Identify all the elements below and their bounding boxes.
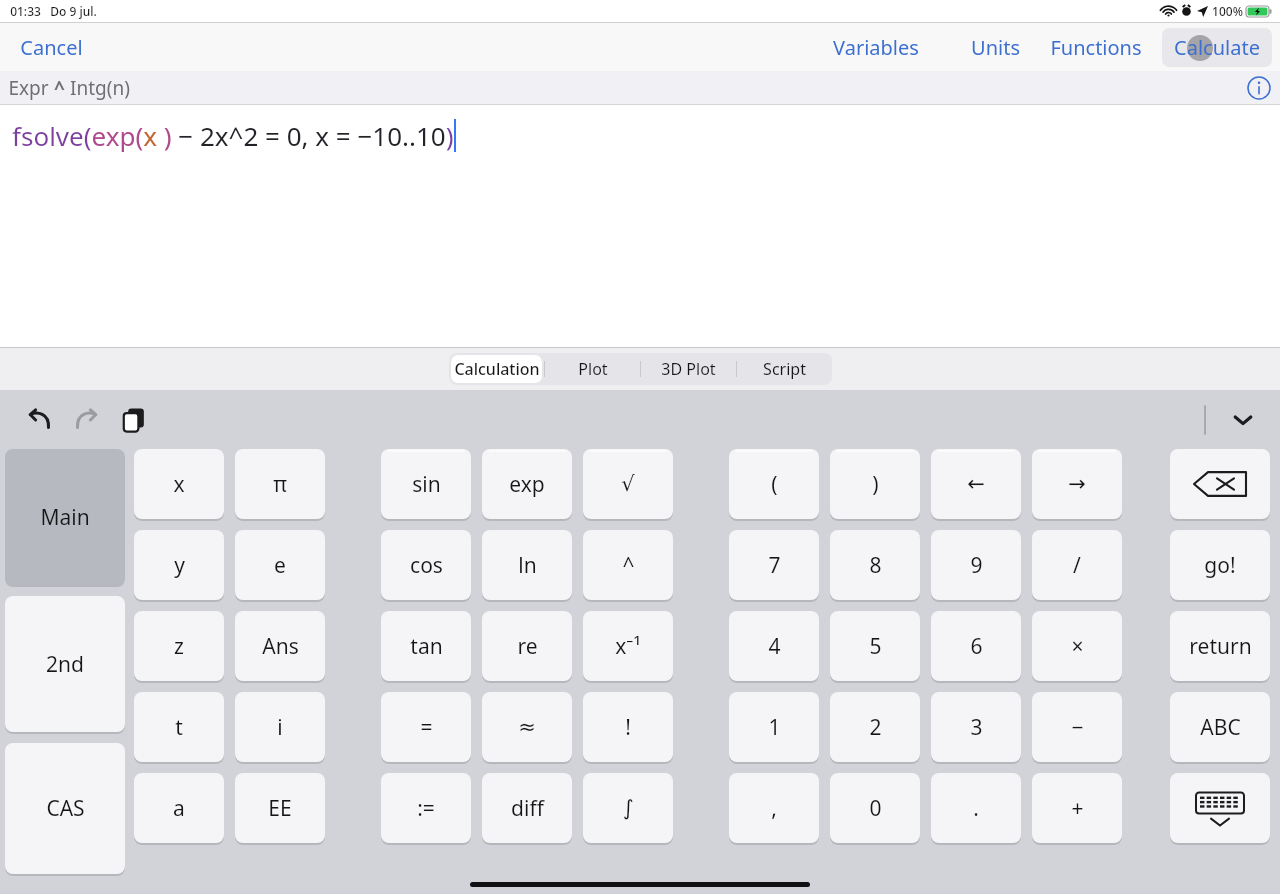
button[interactable]: := [381,773,471,843]
button[interactable]: EE [235,773,325,843]
button[interactable]: CAS [5,743,125,874]
staticText: . [973,794,979,823]
button[interactable]: / [1032,530,1122,600]
button[interactable]: exp [482,449,572,519]
staticText: Intg(n) [70,75,130,101]
staticText: fsolve(exp(x ) − 2x^2 = 0, x = −10..10) [12,118,454,153]
button[interactable]: ABC [1170,692,1270,762]
button[interactable]: × [1032,611,1122,681]
staticText: := [417,794,435,823]
button[interactable]: Variables [825,30,927,65]
button[interactable]: = [381,692,471,762]
staticText: 2 [869,713,882,742]
staticText: diff [511,794,544,823]
button[interactable]: diff [482,773,572,843]
button[interactable]: Info [1247,76,1271,100]
button[interactable]: ∫ [583,773,673,843]
button[interactable]: i [235,692,325,762]
button[interactable]: t [134,692,224,762]
button[interactable]: x⁻¹ [583,611,673,681]
button[interactable]: Functions [1042,30,1150,65]
staticText: a [173,794,185,823]
button[interactable]: → [1032,449,1122,519]
button[interactable]: 0 [830,773,920,843]
staticText: − [1071,713,1084,742]
button[interactable]: y [134,530,224,600]
staticText: Calculate [1174,34,1260,61]
staticText: 3D Plot [661,358,716,380]
button[interactable]: a [134,773,224,843]
staticText: → [1068,472,1086,496]
button[interactable]: 2nd [5,596,125,732]
button[interactable]: , [729,773,819,843]
button[interactable]: 4 [729,611,819,681]
staticText: 2nd [46,650,84,679]
button[interactable]: 5 [830,611,920,681]
staticText: 100% [1212,3,1243,19]
button[interactable]: + [1032,773,1122,843]
button[interactable]: go! [1170,530,1270,600]
staticText: ^ [54,75,65,101]
button[interactable]: 6 [931,611,1021,681]
staticText: √ [621,472,635,496]
button[interactable]: ln [482,530,572,600]
button[interactable]: ) [830,449,920,519]
button[interactable]: cos [381,530,471,600]
button[interactable]: Cancel [12,30,91,65]
button[interactable]: 9 [931,530,1021,600]
button[interactable]: 8 [830,530,920,600]
staticText: Cancel [20,34,83,61]
button[interactable]: return [1170,611,1270,681]
button[interactable]: 2 [830,692,920,762]
button[interactable]: e [235,530,325,600]
button[interactable]: re [482,611,572,681]
button[interactable]: 1 [729,692,819,762]
button[interactable]: Redo [70,403,104,437]
staticText: x [173,470,185,499]
button[interactable]: Main [5,449,125,585]
staticText: 4 [768,632,781,661]
button[interactable]: 7 [729,530,819,600]
button[interactable]: Units [963,30,1028,65]
button[interactable]: Backspace [1170,449,1270,519]
button[interactable]: Hide keyboard [1228,405,1258,435]
button[interactable]: 3D Plot [643,355,734,383]
button[interactable]: Ans [235,611,325,681]
staticText: i [277,713,283,742]
staticText: Main [40,503,90,532]
staticText: Plot [578,358,608,380]
button[interactable]: x [134,449,224,519]
button[interactable]: Undo [22,403,56,437]
button[interactable]: . [931,773,1021,843]
staticText: 8 [869,551,882,580]
button[interactable]: Copy [118,403,152,437]
button[interactable]: − [1032,692,1122,762]
button[interactable]: sin [381,449,471,519]
staticText: go! [1204,551,1236,580]
button[interactable]: z [134,611,224,681]
button[interactable]: tan [381,611,471,681]
staticText: = [420,713,433,742]
button[interactable]: √ [583,449,673,519]
button[interactable]: ! [583,692,673,762]
staticText: tan [410,632,443,661]
button[interactable]: Plot [547,355,638,383]
staticText: 9 [970,551,983,580]
staticText: cos [410,551,443,580]
staticText: CAS [46,794,85,823]
button[interactable]: ← [931,449,1021,519]
button[interactable]: Calculation [451,355,542,383]
button[interactable]: ^ [583,530,673,600]
button[interactable]: Script [739,355,830,383]
button[interactable]: 3 [931,692,1021,762]
staticText: Ans [262,632,299,661]
staticText: Do 9 jul. [50,3,97,19]
staticText: ! [625,713,631,742]
staticText: Calculation [454,358,540,380]
button[interactable]: ≈ [482,692,572,762]
staticText: exp [509,470,545,499]
button[interactable]: ( [729,449,819,519]
button[interactable]: Hide keyboard [1170,773,1270,843]
button[interactable]: Calculate [1162,28,1272,67]
button[interactable]: π [235,449,325,519]
